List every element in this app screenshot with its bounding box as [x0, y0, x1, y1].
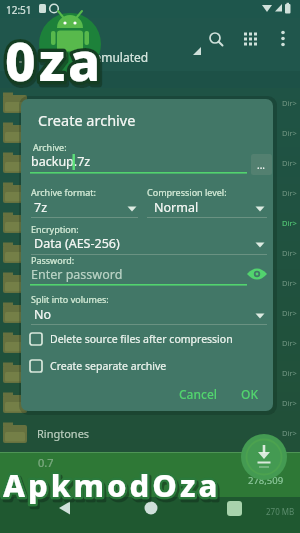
- button[interactable]: [138, 497, 164, 530]
- staticText: Dir>: [282, 398, 297, 408]
- staticText: Enter password: [31, 266, 123, 283]
- button[interactable]: [240, 28, 262, 50]
- button[interactable]: Notifications: [0, 328, 300, 358]
- staticText: Alarms: [37, 96, 74, 111]
- staticText: 7z: [34, 199, 48, 216]
- button[interactable]: Android: [0, 118, 300, 148]
- button[interactable]: Documents: [0, 208, 300, 238]
- button[interactable]: [147, 197, 267, 217]
- button[interactable]: Movies: [0, 268, 300, 298]
- staticText: Documents: [37, 216, 97, 231]
- button[interactable]: Cancel: [167, 381, 229, 407]
- staticText: Encryption:: [31, 223, 79, 235]
- staticText: Dir>: [282, 278, 297, 288]
- staticText: Dir>: [282, 98, 297, 108]
- staticText: Dir>: [282, 128, 297, 138]
- staticText: Audiobooks: [37, 156, 99, 171]
- staticText: Archive format:: [31, 186, 96, 198]
- button[interactable]: ...: [251, 154, 272, 175]
- staticText: 278,509: [248, 474, 284, 487]
- button[interactable]: [27, 329, 267, 350]
- button[interactable]: [52, 497, 78, 530]
- button[interactable]: [241, 434, 287, 480]
- staticText: OK: [241, 386, 258, 402]
- staticText: ApkmodOza: [5, 467, 223, 509]
- staticText: ...: [257, 158, 266, 172]
- staticText: Notifications: [37, 336, 103, 351]
- staticText: 12:51: [6, 3, 32, 17]
- staticText: 0.7: [38, 455, 54, 470]
- button[interactable]: [272, 28, 294, 50]
- staticText: ApkmodOza: [3, 464, 221, 506]
- staticText: Create separate archive: [50, 359, 167, 373]
- button[interactable]: Ringtones: [0, 418, 300, 448]
- staticText: Dir>: [282, 248, 297, 258]
- staticText: Dir>: [282, 158, 297, 168]
- staticText: Cancel: [179, 386, 218, 402]
- staticText: Dir>: [282, 428, 297, 438]
- staticText: Password:: [31, 254, 75, 266]
- staticText: 270 MB: [266, 506, 295, 517]
- staticText: Dir>: [282, 338, 297, 348]
- button[interactable]: Alarms: [0, 88, 300, 118]
- staticText: Archive:: [33, 141, 67, 153]
- staticText: Dir>: [282, 368, 297, 378]
- button[interactable]: [247, 264, 269, 284]
- staticText: ApkmodOza: [3, 464, 221, 506]
- staticText: 0za: [7, 27, 106, 99]
- staticText: Ringtones: [37, 426, 90, 441]
- button[interactable]: Music: [0, 298, 300, 328]
- button[interactable]: [31, 234, 267, 254]
- staticText: Dir>: [282, 218, 297, 228]
- button[interactable]: [30, 265, 247, 284]
- staticText: Normal: [154, 199, 199, 216]
- staticText: Create archive: [38, 110, 136, 130]
- staticText: /emulated: [90, 49, 149, 65]
- staticText: No: [34, 306, 52, 323]
- staticText: Delete source files after compression: [50, 332, 233, 346]
- staticText: Dir>: [282, 188, 297, 198]
- staticText: Movies: [37, 276, 74, 291]
- staticText: Compression level:: [147, 186, 227, 198]
- button[interactable]: [27, 356, 267, 377]
- staticText: Data (AES-256): [34, 235, 120, 252]
- button[interactable]: Pictures: [0, 358, 300, 388]
- button[interactable]: [222, 497, 248, 530]
- button[interactable]: Download: [0, 238, 300, 268]
- staticText: Music: [37, 306, 68, 321]
- button[interactable]: [31, 197, 139, 217]
- staticText: Pictures: [37, 366, 79, 381]
- staticText: Dir>: [282, 308, 297, 318]
- staticText: backup.7z: [31, 153, 91, 170]
- staticText: Split into volumes:: [31, 293, 109, 305]
- button[interactable]: [4, 50, 28, 74]
- staticText: DCIM: [37, 186, 66, 201]
- staticText: Download: [37, 246, 90, 261]
- button[interactable]: Audiobooks: [0, 148, 300, 178]
- button[interactable]: DCIM: [0, 178, 300, 208]
- button[interactable]: [205, 28, 227, 50]
- button[interactable]: Podcasts: [0, 388, 300, 418]
- staticText: 0za: [5, 24, 104, 96]
- button[interactable]: [31, 304, 267, 324]
- button[interactable]: OK: [227, 381, 271, 407]
- staticText: 0za: [5, 24, 104, 96]
